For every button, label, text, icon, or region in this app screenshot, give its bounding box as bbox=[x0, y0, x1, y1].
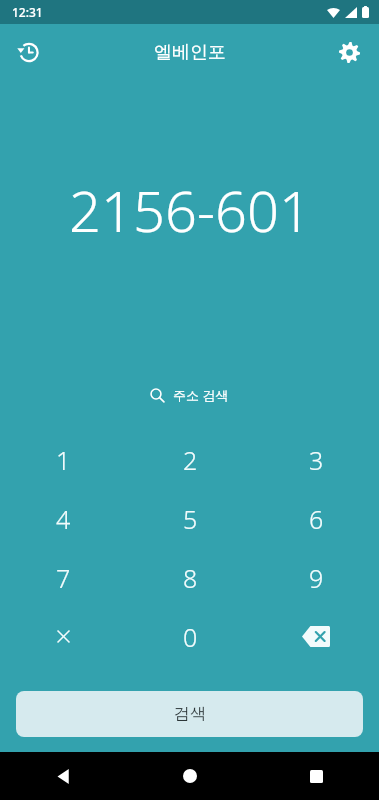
button[interactable]: Recent apps bbox=[253, 752, 379, 800]
staticText: 6 bbox=[309, 502, 324, 536]
button[interactable]: 0 bbox=[127, 607, 253, 666]
button[interactable]: 4 bbox=[0, 489, 127, 548]
staticText: 9 bbox=[309, 561, 324, 595]
staticText: 1 bbox=[56, 443, 71, 477]
staticText: 4 bbox=[56, 502, 71, 536]
button[interactable]: Back bbox=[0, 752, 127, 800]
button[interactable]: 2 bbox=[127, 430, 253, 489]
staticText: 주소 검색 bbox=[173, 386, 229, 404]
staticText: 7 bbox=[56, 561, 71, 595]
button[interactable]: Backspace bbox=[253, 607, 379, 666]
button[interactable]: History bbox=[6, 30, 50, 74]
staticText: 5 bbox=[183, 502, 198, 536]
staticText: 8 bbox=[183, 561, 198, 595]
staticText: 엘베인포 bbox=[154, 41, 226, 64]
button[interactable]: 검색 bbox=[16, 691, 363, 737]
staticText: 2 bbox=[183, 443, 198, 477]
button[interactable]: Settings bbox=[327, 30, 371, 74]
staticText: 검색 bbox=[174, 704, 206, 724]
button[interactable]: Clear bbox=[0, 607, 127, 666]
button[interactable]: 주소 검색 bbox=[140, 382, 239, 408]
staticText: 2156-601 bbox=[69, 172, 311, 248]
button[interactable]: 7 bbox=[0, 548, 127, 607]
button[interactable]: 6 bbox=[253, 489, 379, 548]
button[interactable]: Home bbox=[127, 752, 253, 800]
button[interactable]: 8 bbox=[127, 548, 253, 607]
staticText: 0 bbox=[183, 620, 198, 654]
button[interactable]: 9 bbox=[253, 548, 379, 607]
staticText: 3 bbox=[309, 443, 324, 477]
staticText: 12:31 bbox=[12, 4, 43, 20]
button[interactable]: 1 bbox=[0, 430, 127, 489]
button[interactable]: 3 bbox=[253, 430, 379, 489]
button[interactable]: 5 bbox=[127, 489, 253, 548]
